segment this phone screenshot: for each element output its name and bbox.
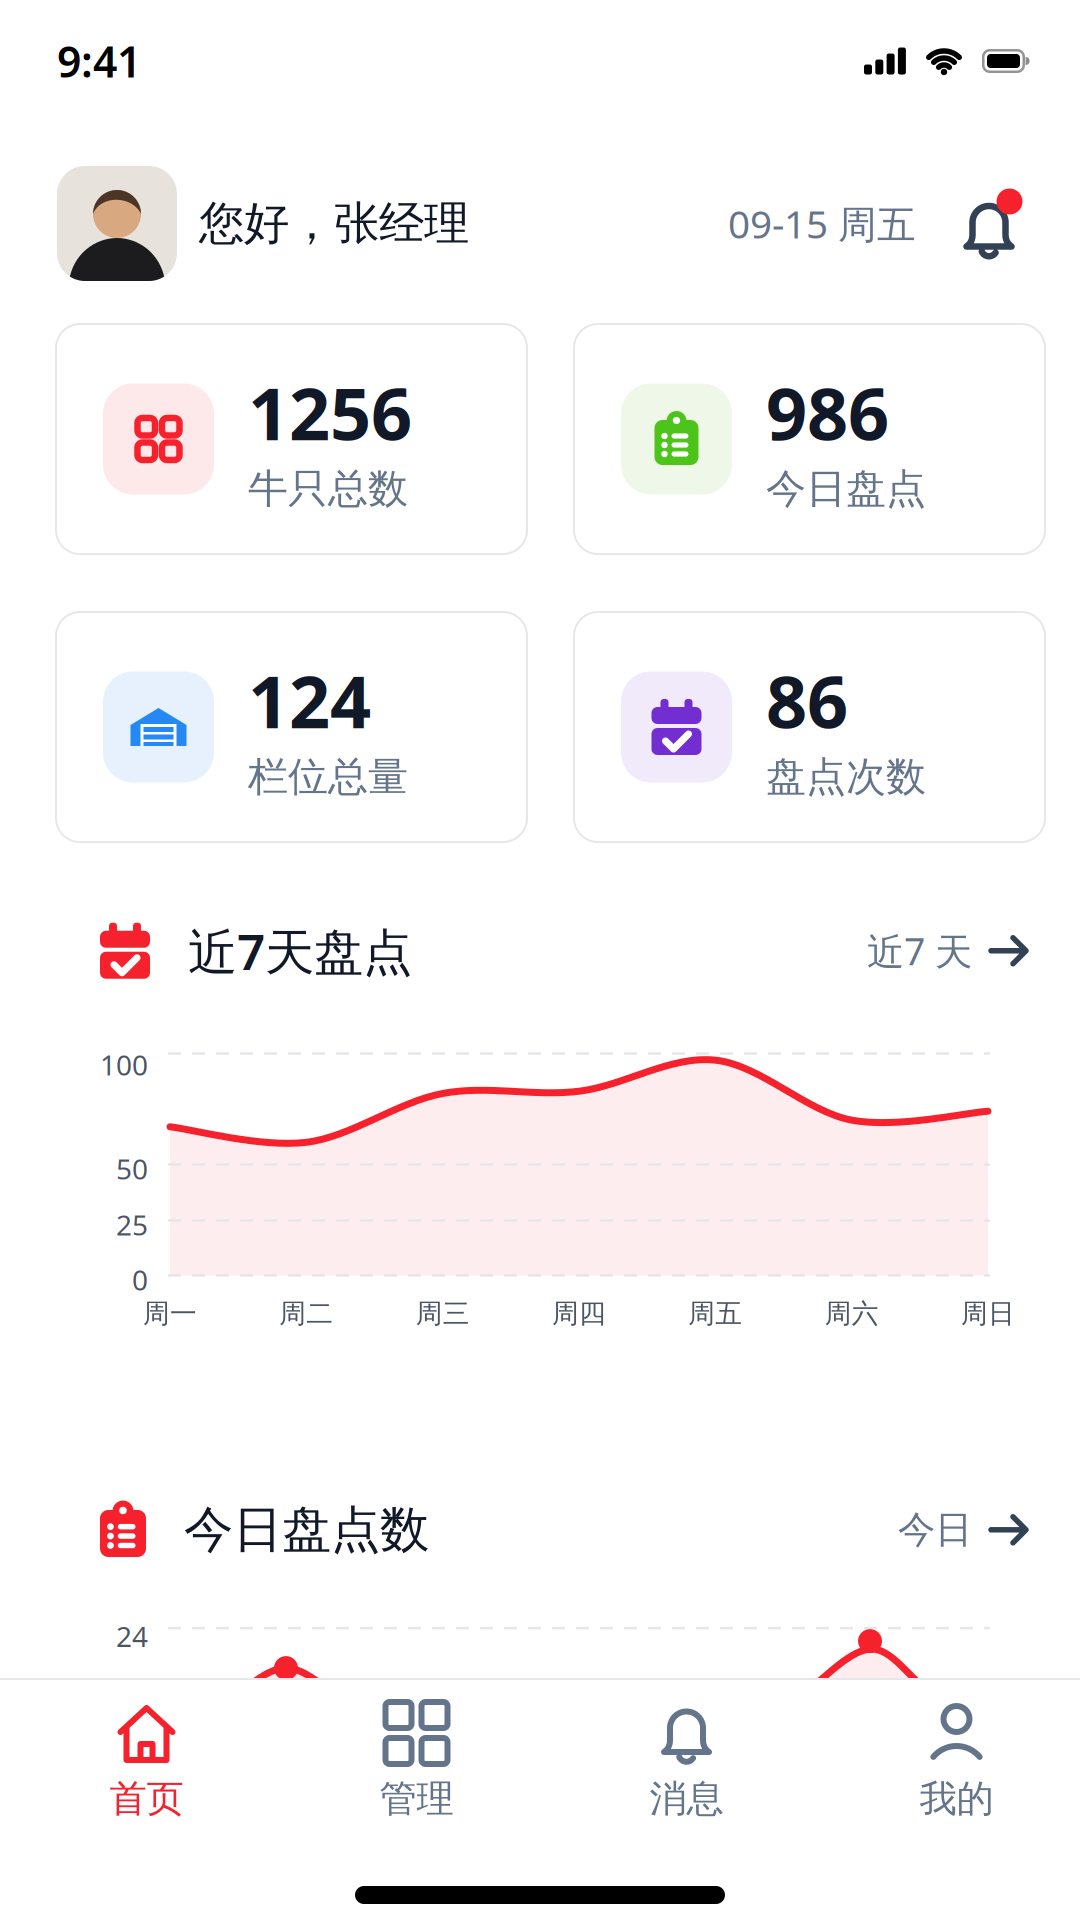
staticText: 管理: [379, 1776, 453, 1822]
staticText: 周六: [825, 1297, 879, 1330]
staticText: 盘点次数: [766, 752, 926, 801]
staticText: 周四: [552, 1297, 606, 1330]
button[interactable]: 首页: [11, 1702, 281, 1822]
staticText: 消息: [649, 1776, 723, 1822]
button[interactable]: 我的: [821, 1702, 1080, 1822]
staticText: 您好，张经理: [199, 196, 469, 251]
staticText: 124: [248, 653, 371, 748]
button[interactable]: 消息: [551, 1702, 821, 1822]
staticText: 周三: [416, 1297, 470, 1330]
staticText: 9:41: [57, 33, 141, 89]
button[interactable]: 通知: [960, 187, 1024, 259]
staticText: 栏位总量: [248, 752, 408, 801]
staticText: 25: [116, 1206, 148, 1243]
staticText: 1256: [248, 365, 412, 460]
button[interactable]: 今日: [898, 1507, 1028, 1553]
staticText: 牛只总数: [248, 464, 408, 513]
staticText: 我的: [919, 1776, 993, 1822]
staticText: 50: [116, 1150, 148, 1187]
staticText: 今日盘点: [766, 464, 926, 513]
staticText: 周五: [688, 1297, 742, 1330]
staticText: 09-15 周五: [728, 198, 916, 249]
staticText: 首页: [109, 1776, 183, 1822]
staticText: 986: [766, 365, 889, 460]
staticText: 近7天盘点: [188, 918, 412, 983]
button[interactable]: 986: [574, 324, 1045, 554]
button[interactable]: 管理: [281, 1702, 551, 1822]
staticText: 86: [766, 653, 848, 748]
staticText: 今日盘点数: [184, 1499, 429, 1560]
staticText: 24: [116, 1617, 148, 1655]
staticText: 周二: [279, 1297, 333, 1330]
button[interactable]: 124: [56, 612, 527, 842]
staticText: 近7 天: [867, 926, 972, 976]
staticText: 周日: [961, 1297, 1015, 1330]
button[interactable]: 近7 天: [867, 926, 1028, 976]
button[interactable]: 86: [574, 612, 1045, 842]
staticText: 周一: [143, 1297, 197, 1330]
button[interactable]: 1256: [56, 324, 527, 554]
staticText: 0: [132, 1261, 148, 1298]
staticText: 今日: [898, 1507, 972, 1553]
staticText: 100: [100, 1046, 148, 1083]
